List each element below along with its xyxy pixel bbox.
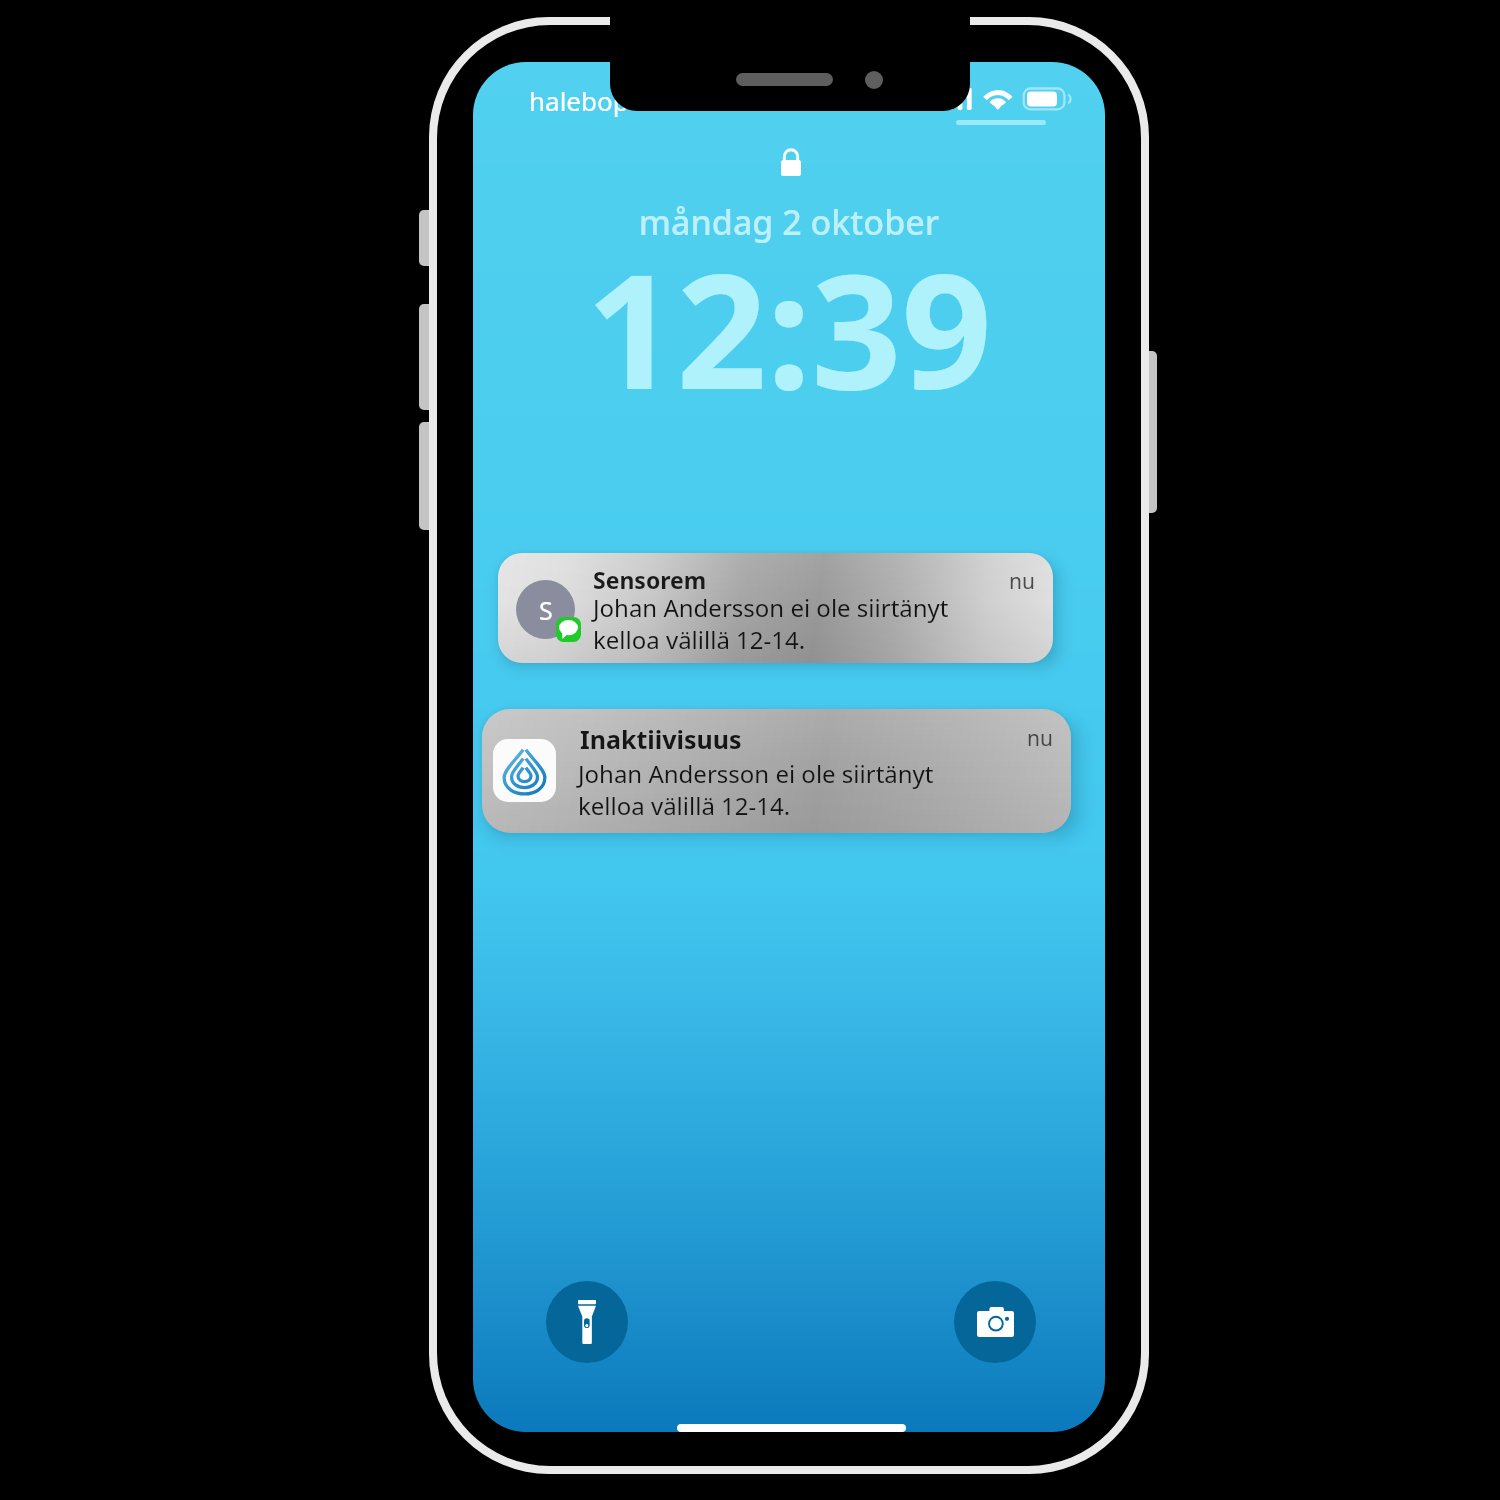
staticText: Johan Andersson ei ole siirtänyt kelloa …: [593, 591, 949, 656]
staticText: S: [539, 593, 553, 627]
button[interactable]: Flashlight: [546, 1281, 628, 1363]
button[interactable]: Inaktiivisuus: [482, 709, 1071, 833]
button[interactable]: S: [498, 553, 1053, 663]
staticText: nu: [1027, 724, 1053, 753]
button[interactable]: Camera: [954, 1281, 1036, 1363]
staticText: Sensorem: [593, 564, 707, 595]
staticText: Inaktiivisuus: [580, 722, 742, 756]
staticText: 12:39: [473, 220, 1105, 435]
staticText: måndag 2 oktober: [473, 199, 1105, 245]
staticText: nu: [1009, 567, 1035, 596]
staticText: Johan Andersson ei ole siirtänyt kelloa …: [578, 757, 934, 822]
staticText: halebop: [529, 83, 629, 118]
